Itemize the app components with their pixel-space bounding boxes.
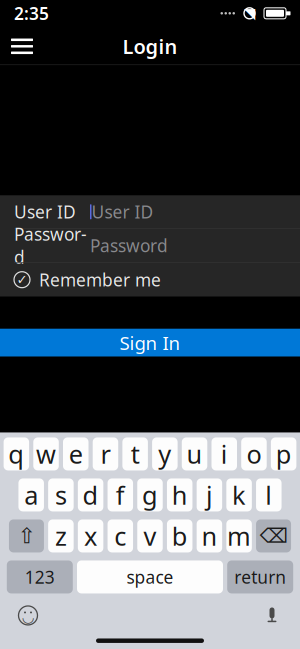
staticText: x	[84, 519, 97, 553]
staticText: 123	[25, 565, 55, 588]
staticText: d	[83, 478, 99, 512]
staticText: l	[265, 478, 272, 512]
staticText: y	[158, 437, 171, 471]
button[interactable]: o	[241, 437, 267, 470]
button[interactable]: u	[182, 437, 207, 470]
staticText: User ID	[91, 200, 153, 223]
button[interactable]: s	[48, 478, 74, 511]
staticText: Password	[14, 222, 87, 268]
button[interactable]: w	[33, 437, 59, 470]
staticText: n	[201, 519, 217, 553]
staticText: w	[36, 437, 56, 471]
staticText: b	[172, 519, 188, 553]
staticText: ◥	[244, 5, 255, 22]
button[interactable]: y	[152, 437, 178, 470]
staticText: v	[143, 519, 156, 553]
button[interactable]: Delete	[256, 519, 291, 552]
staticText: e	[69, 437, 83, 471]
staticText: f	[116, 478, 125, 512]
button[interactable]: ✓	[0, 263, 300, 297]
button[interactable]: l	[256, 478, 281, 511]
staticText: k	[232, 478, 246, 512]
button[interactable]: i	[211, 437, 237, 470]
button[interactable]: f	[107, 478, 133, 511]
button[interactable]: Dictate	[254, 600, 290, 630]
staticText: 2:35	[14, 2, 49, 25]
button[interactable]: g	[137, 478, 163, 511]
button[interactable]: p	[271, 437, 296, 470]
staticText: p	[276, 437, 292, 471]
button[interactable]: m	[226, 519, 252, 552]
staticText: j	[206, 478, 213, 512]
button[interactable]: k	[226, 478, 252, 511]
button[interactable]: t	[122, 437, 148, 470]
staticText: g	[142, 478, 158, 512]
button[interactable]: h	[167, 478, 192, 511]
button[interactable]: q	[4, 437, 29, 470]
button[interactable]: Shift	[9, 519, 44, 552]
staticText: Login	[122, 33, 177, 60]
staticText: a	[24, 478, 38, 512]
staticText: s	[55, 478, 67, 512]
staticText: ✓	[16, 272, 27, 287]
staticText: Remember me	[39, 268, 161, 291]
button[interactable]: Sign In	[0, 329, 300, 357]
staticText: User ID	[14, 200, 76, 223]
button[interactable]: a	[18, 478, 44, 511]
button[interactable]: z	[48, 519, 74, 552]
button[interactable]: space	[77, 560, 223, 593]
button[interactable]: Return	[227, 560, 293, 593]
staticText: space	[126, 565, 173, 588]
staticText: ⇧	[17, 524, 35, 548]
staticText: h	[172, 478, 188, 512]
staticText: Sign In	[119, 330, 180, 355]
button[interactable]: x	[78, 519, 103, 552]
staticText: ◡	[22, 609, 33, 625]
staticText: return	[234, 565, 286, 588]
button[interactable]: b	[167, 519, 192, 552]
button[interactable]: Emoji	[10, 600, 46, 630]
button[interactable]: Menu	[0, 26, 44, 66]
button[interactable]: User ID	[0, 195, 300, 228]
staticText: u	[186, 437, 202, 471]
staticText: m	[227, 519, 251, 553]
button[interactable]: r	[93, 437, 118, 470]
staticText: Password	[90, 234, 168, 257]
button[interactable]: j	[197, 478, 222, 511]
button[interactable]: e	[63, 437, 88, 470]
staticText: c	[114, 519, 126, 553]
button[interactable]: n	[197, 519, 222, 552]
staticText: i	[221, 437, 228, 471]
staticText: q	[8, 437, 24, 471]
button[interactable]: c	[107, 519, 133, 552]
button[interactable]: Password	[0, 229, 300, 262]
button[interactable]: d	[78, 478, 103, 511]
staticText: z	[55, 519, 67, 553]
button[interactable]: Numbers	[7, 560, 73, 593]
button[interactable]: v	[137, 519, 163, 552]
staticText: ⌫	[259, 525, 287, 547]
staticText: o	[246, 437, 261, 471]
staticText: t	[131, 437, 140, 471]
staticText: r	[100, 437, 110, 471]
